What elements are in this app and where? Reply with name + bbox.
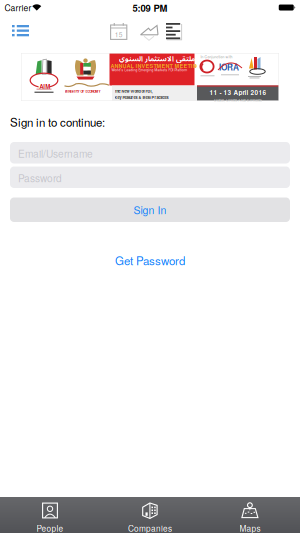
button[interactable]: Messages	[140, 25, 159, 41]
staticText: IORA	[219, 61, 239, 73]
staticText: Sign In	[133, 202, 166, 217]
staticText: Companies	[128, 522, 172, 533]
button[interactable]: News	[166, 23, 182, 40]
staticText: MINISTRY OF ECONOMY	[64, 89, 100, 94]
button[interactable]: Companies	[100, 497, 200, 533]
staticText: Sign in to continue:	[10, 113, 105, 130]
staticText: Dubai, United Arab Emirates	[214, 97, 262, 103]
button[interactable]: Get Password	[115, 252, 185, 268]
button[interactable]: Maps	[200, 497, 300, 533]
staticText: Key Features & Best Practices	[114, 95, 168, 100]
staticText: 15	[115, 30, 123, 39]
staticText: In Conjunction with	[200, 54, 232, 59]
button[interactable]: Agenda	[110, 23, 127, 40]
staticText: 11 - 13 April 2016	[209, 88, 266, 97]
staticText: Maps	[239, 522, 260, 533]
staticText: ANNUAL INVESTMENT MEETING	[110, 62, 200, 70]
staticText: 5:09 PM	[132, 1, 167, 15]
staticText: World's Leading Emerging Markets FDI Pla…	[111, 67, 187, 72]
staticText: ملتقى الاستثمار السنوي	[118, 54, 194, 63]
staticText: Email/Username	[18, 146, 93, 161]
staticText: AIM	[39, 82, 50, 91]
button[interactable]: People	[0, 497, 100, 533]
button[interactable]: Sign In	[10, 197, 290, 222]
staticText: Carrier	[4, 1, 31, 14]
button[interactable]: Menu	[12, 25, 29, 36]
staticText: The New World of FDI,	[114, 88, 152, 94]
staticText: People	[36, 522, 63, 533]
staticText: Get Password	[115, 252, 185, 268]
staticText: Password	[18, 171, 62, 185]
